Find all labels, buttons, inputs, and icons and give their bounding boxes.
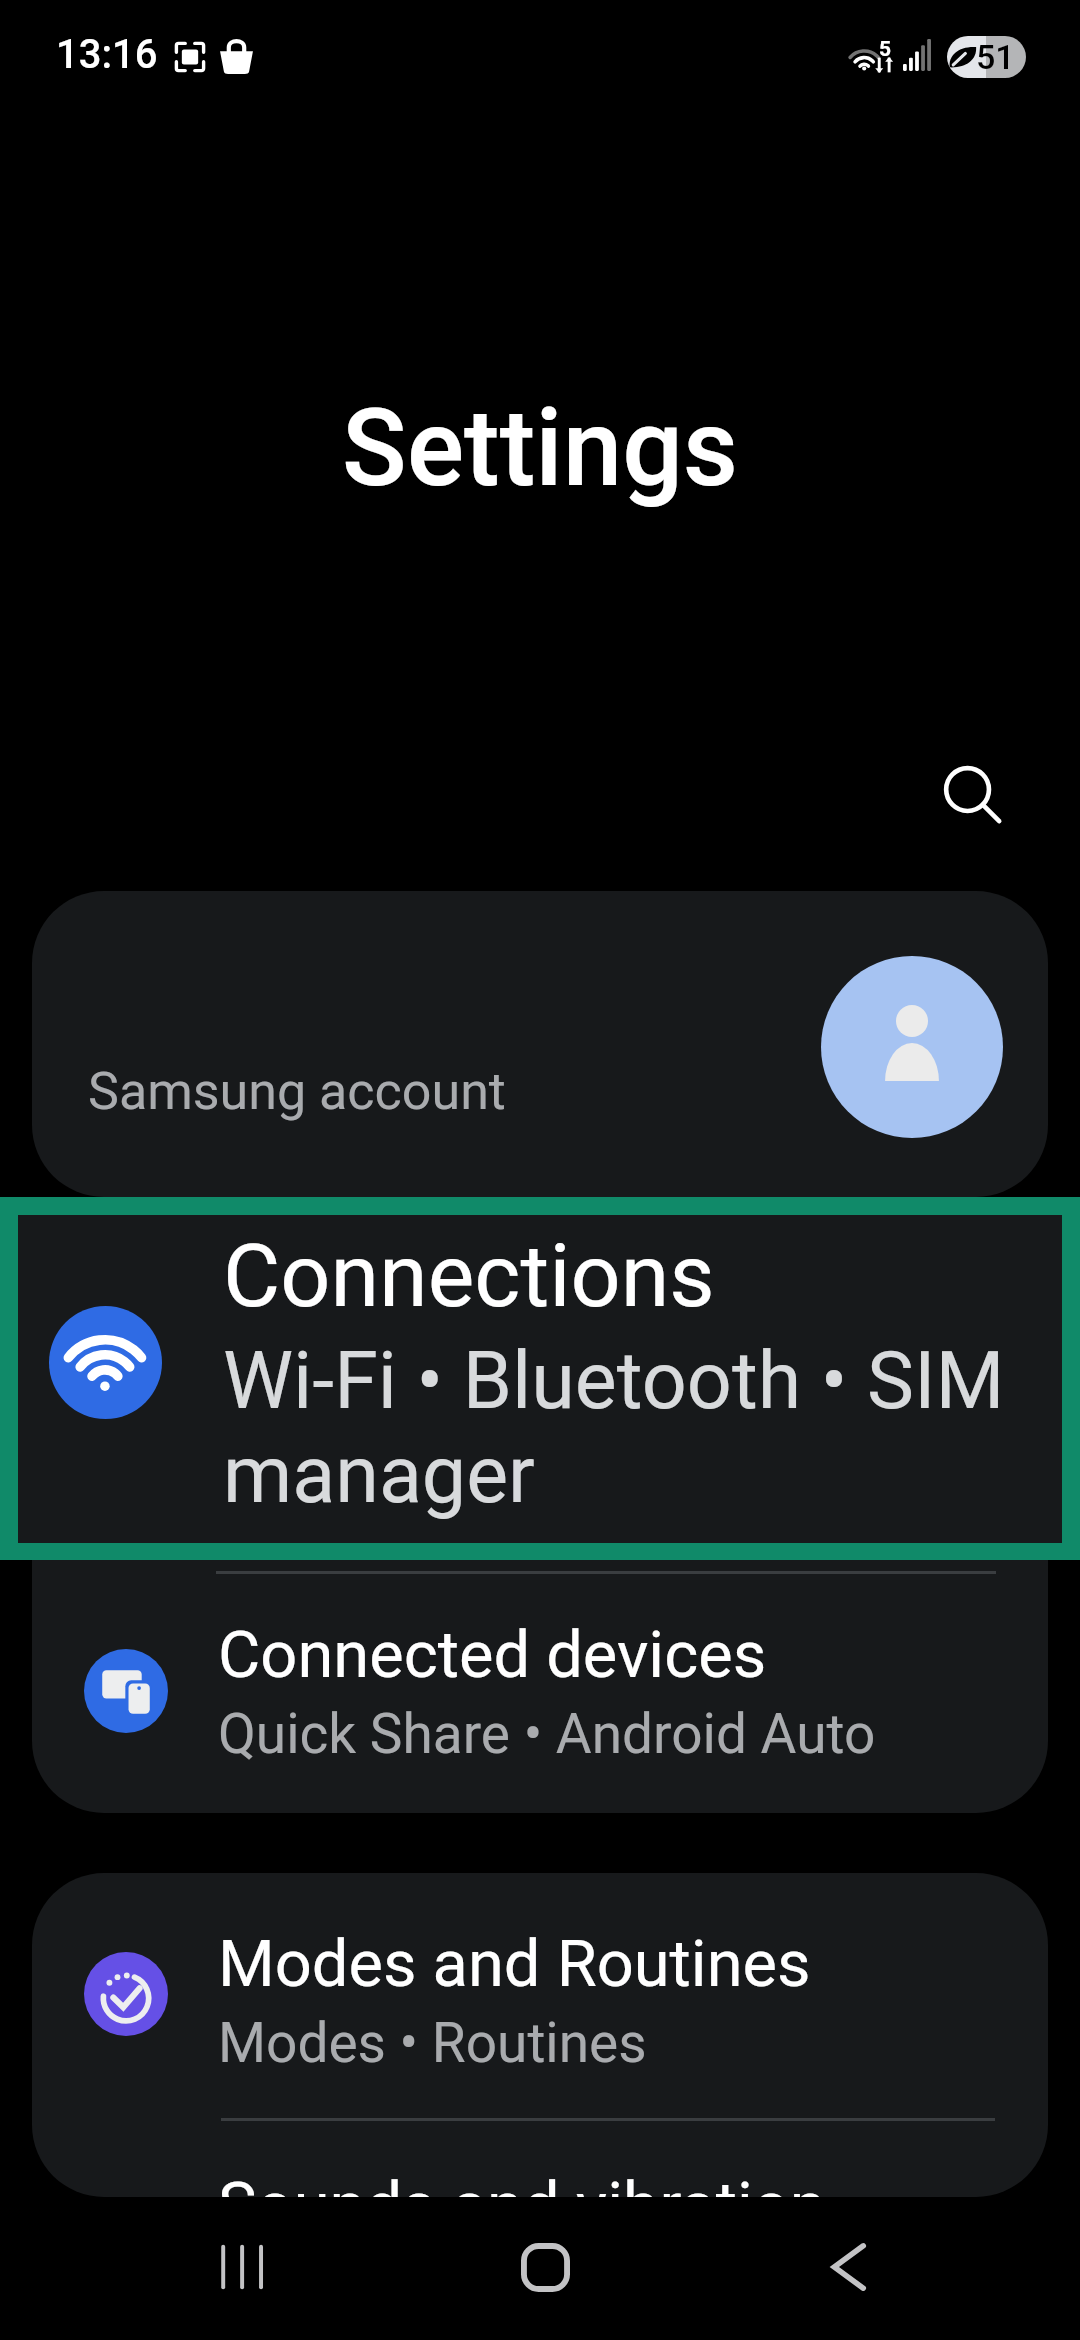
- button[interactable]: Connected devices: [32, 1584, 1048, 1812]
- staticText: Settings: [342, 386, 739, 511]
- staticText: Modes and Routines: [218, 1926, 811, 2002]
- staticText: Connections: [223, 1224, 715, 1327]
- button[interactable]: Sounds and vibration: [32, 2135, 1048, 2197]
- button[interactable]: Search: [909, 731, 1041, 863]
- staticText: Samsung account: [88, 1061, 506, 1122]
- button[interactable]: Recents: [183, 2207, 303, 2327]
- staticText: 51: [976, 37, 1015, 77]
- staticText: Quick Share • Android Auto: [218, 1702, 876, 1766]
- staticText: Wi-Fi • Bluetooth • SIM manager: [223, 1335, 1043, 1522]
- staticText: Modes • Routines: [218, 2011, 647, 2075]
- button[interactable]: Home: [485, 2207, 605, 2327]
- staticText: 5: [879, 37, 892, 62]
- button[interactable]: Connections: [18, 1215, 1062, 1543]
- staticText: Connected devices: [218, 1617, 767, 1693]
- button[interactable]: Modes and Routines: [32, 1893, 1048, 2121]
- staticText: Sounds and vibration: [218, 2168, 826, 2197]
- button[interactable]: Samsung account: [32, 891, 1048, 1197]
- button[interactable]: Back: [795, 2207, 915, 2327]
- staticText: 13:16: [56, 31, 158, 78]
